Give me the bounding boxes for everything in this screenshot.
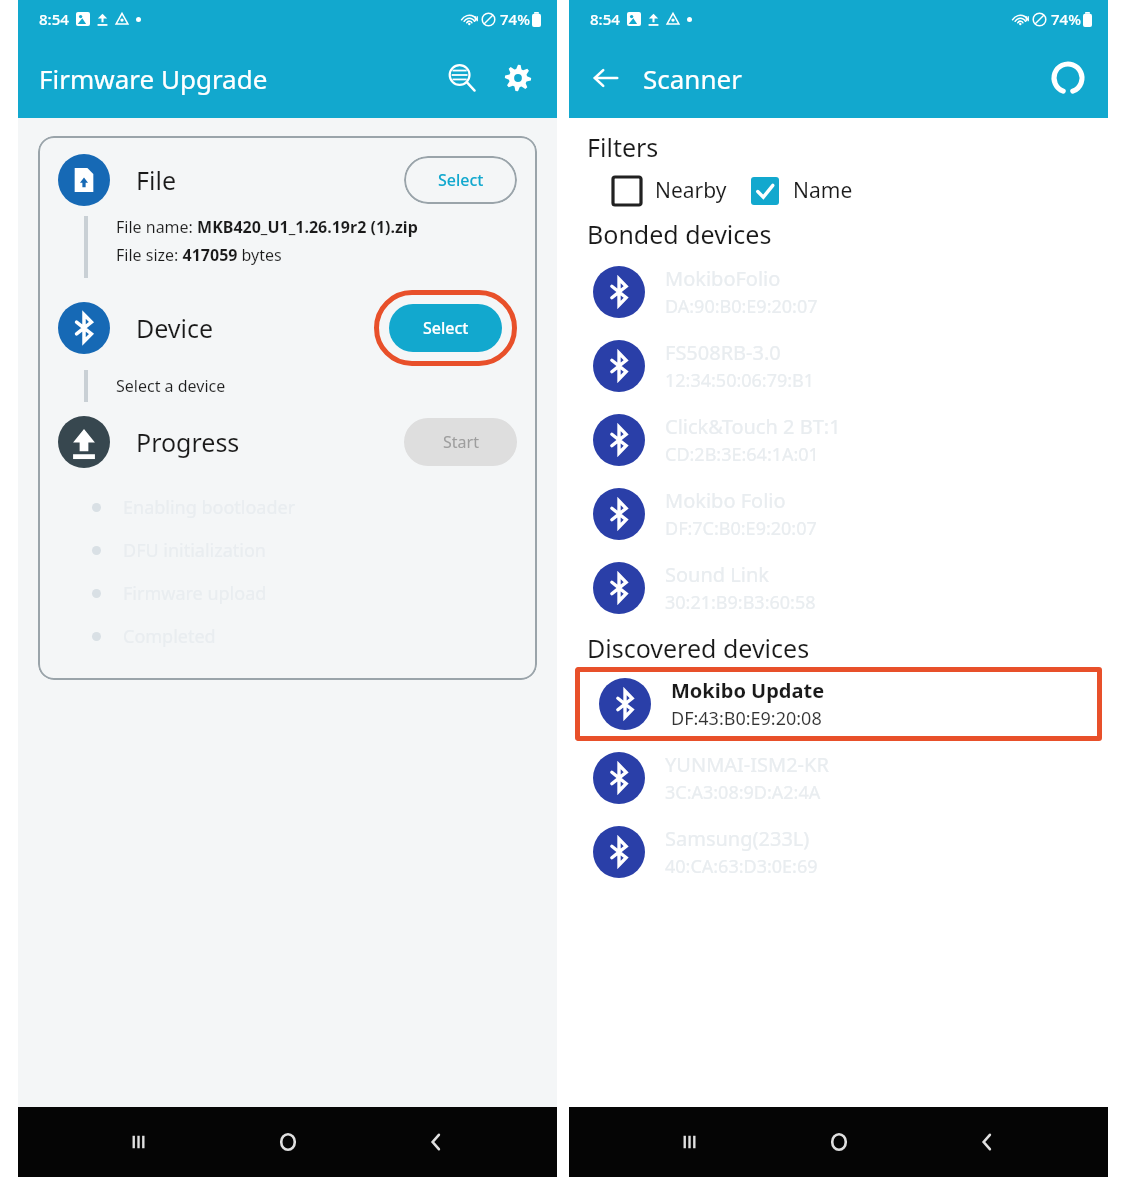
button[interactable]: Home (260, 1114, 316, 1170)
button[interactable]: MokiboFolio (569, 255, 1108, 329)
staticText: Enabling bootloader (123, 495, 296, 520)
button[interactable]: Back (583, 55, 629, 101)
button[interactable]: Select (389, 304, 502, 352)
staticText: Discovered devices (587, 631, 810, 665)
staticText: DF:7C:B0:E9:20:07 (665, 516, 817, 541)
staticText: 12:34:50:06:79:B1 (665, 368, 815, 393)
staticText: Start (443, 431, 479, 453)
button[interactable]: Settings (495, 55, 541, 101)
staticText: File size: 417059 bytes (116, 244, 282, 266)
staticText: FS508RB-3.0 (665, 339, 781, 366)
staticText: DF:43:B0:E9:20:08 (671, 706, 822, 731)
staticText: File name: MKB420_U1_1.26.19r2 (1).zip (116, 216, 418, 238)
staticText: Click&Touch 2 BT:1 (665, 413, 841, 440)
staticText: Filters (587, 130, 659, 164)
staticText: YUNMAI-ISM2-KR (665, 751, 829, 778)
button[interactable]: Mokibo Update (575, 667, 1102, 741)
staticText: 74% (500, 9, 530, 29)
staticText: Nearby (655, 176, 727, 205)
staticText: Mokibo Update (671, 677, 825, 704)
button[interactable]: Click&Touch 2 BT:1 (569, 403, 1108, 477)
button[interactable]: Home (811, 1114, 867, 1170)
button[interactable]: Start (404, 418, 517, 466)
staticText: 40:CA:63:D3:0E:69 (665, 854, 818, 879)
button[interactable]: Recents (111, 1114, 167, 1170)
button[interactable]: Recents (662, 1114, 718, 1170)
staticText: 8:54 (590, 9, 620, 29)
button[interactable]: Search log (439, 55, 485, 101)
staticText: Sound Link (665, 561, 769, 588)
staticText: 3C:A3:08:9D:A2:4A (665, 780, 821, 805)
staticText: 74% (1051, 9, 1081, 29)
button[interactable]: Select (404, 156, 517, 204)
staticText: DA:90:B0:E9:20:07 (665, 294, 818, 319)
staticText: Bonded devices (587, 217, 772, 251)
staticText: File (136, 163, 176, 197)
button[interactable]: Nearby (609, 172, 731, 209)
button[interactable]: Name (747, 172, 857, 209)
staticText: Firmware upload (123, 581, 267, 606)
staticText: MokiboFolio (665, 265, 781, 292)
button[interactable]: Mokibo Folio (569, 477, 1108, 551)
button[interactable]: Back (408, 1114, 464, 1170)
button[interactable]: Stop scanning (1044, 54, 1092, 102)
staticText: Samsung(233L) (665, 825, 810, 852)
staticText: Scanner (643, 61, 742, 96)
staticText: 8:54 (39, 9, 69, 29)
staticText: Select a device (116, 375, 226, 397)
staticText: Progress (136, 425, 240, 459)
staticText: CD:2B:3E:64:1A:01 (665, 442, 819, 467)
staticText: Mokibo Folio (665, 487, 786, 514)
staticText: DFU initialization (123, 538, 266, 563)
staticText: Name (793, 176, 853, 205)
button[interactable]: FS508RB-3.0 (569, 329, 1108, 403)
staticText: 30:21:B9:B3:60:58 (665, 590, 816, 615)
staticText: Select (438, 169, 484, 191)
button[interactable]: Samsung(233L) (569, 815, 1108, 889)
staticText: Completed (123, 624, 216, 649)
staticText: Device (136, 311, 214, 345)
button[interactable]: Back (959, 1114, 1015, 1170)
button[interactable]: Sound Link (569, 551, 1108, 625)
staticText: Firmware Upgrade (39, 61, 268, 96)
staticText: Select (423, 317, 469, 339)
button[interactable]: YUNMAI-ISM2-KR (569, 741, 1108, 815)
